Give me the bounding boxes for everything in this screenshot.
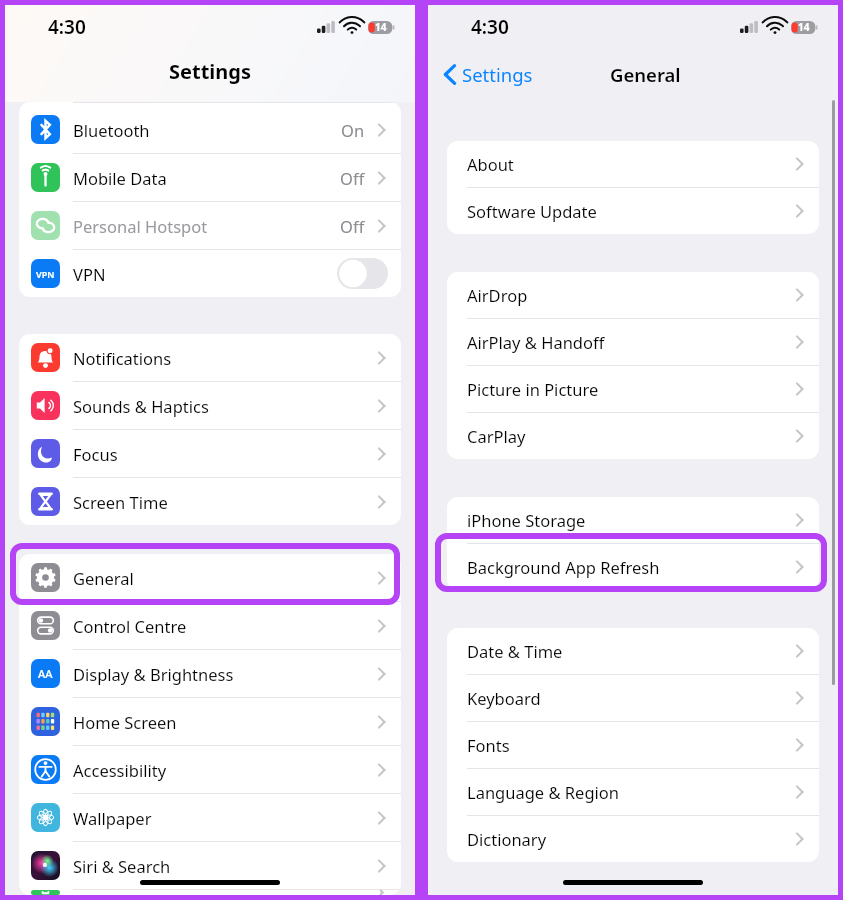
button[interactable]: Background App Refresh: [447, 544, 819, 590]
staticText: Sounds & Haptics: [73, 395, 374, 417]
button[interactable]: Notifications: [19, 334, 401, 382]
button[interactable]: General: [19, 554, 401, 602]
staticText: Focus: [73, 443, 374, 465]
button[interactable]: Wallpaper: [19, 794, 401, 842]
button[interactable]: Language & Region: [447, 769, 819, 816]
button[interactable]: CarPlay: [447, 413, 819, 459]
button[interactable]: Sounds & Haptics: [19, 382, 401, 430]
button[interactable]: Settings: [440, 57, 537, 92]
staticText: VPN: [73, 263, 337, 285]
staticText: 4:30: [471, 14, 509, 40]
staticText: iPhone Storage: [467, 509, 792, 531]
staticText: Personal Hotspot: [73, 215, 340, 237]
staticText: 4:30: [48, 14, 86, 40]
staticText: Language & Region: [467, 781, 792, 803]
staticText: AA: [38, 666, 53, 681]
button[interactable]: AirPlay & Handoff: [447, 319, 819, 366]
staticText: Date & Time: [467, 640, 792, 662]
staticText: Screen Time: [73, 491, 374, 513]
staticText: Software Update: [467, 200, 792, 222]
button[interactable]: Face ID & Passcode: [19, 890, 401, 895]
staticText: Settings: [462, 62, 533, 87]
staticText: CarPlay: [467, 425, 792, 447]
staticText: Dictionary: [467, 828, 792, 850]
staticText: Display & Brightness: [73, 663, 374, 685]
staticText: 14: [798, 20, 810, 34]
other: General highlighted: [10, 543, 400, 605]
staticText: Accessibility: [73, 759, 374, 781]
button[interactable]: Accessibility: [19, 746, 401, 794]
staticText: General: [73, 567, 374, 589]
staticText: Bluetooth: [73, 119, 341, 141]
button[interactable]: Home Screen: [19, 698, 401, 746]
button[interactable]: Screen Time: [19, 478, 401, 525]
button[interactable]: Personal Hotspot: [19, 202, 401, 250]
staticText: General: [610, 62, 681, 87]
staticText: Settings: [169, 58, 251, 85]
button[interactable]: VPN: [19, 250, 401, 297]
staticText: Home Screen: [73, 711, 374, 733]
button[interactable]: Fonts: [447, 722, 819, 769]
button[interactable]: Mobile Data: [19, 154, 401, 202]
button[interactable]: Siri & Search: [19, 842, 401, 890]
staticText: Control Centre: [73, 615, 374, 637]
staticText: Background App Refresh: [467, 556, 792, 578]
staticText: Off: [340, 215, 365, 237]
staticText: Wallpaper: [73, 807, 374, 829]
button[interactable]: Dictionary: [447, 816, 819, 862]
staticText: Picture in Picture: [467, 378, 792, 400]
staticText: Fonts: [467, 734, 792, 756]
staticText: Keyboard: [467, 687, 792, 709]
button[interactable]: AirDrop: [447, 272, 819, 319]
staticText: Siri & Search: [73, 855, 374, 877]
button[interactable]: Keyboard: [447, 675, 819, 722]
button[interactable]: Focus: [19, 430, 401, 478]
staticText: AirDrop: [467, 284, 792, 306]
staticText: On: [341, 119, 365, 141]
staticText: About: [467, 153, 792, 175]
button[interactable]: Bluetooth: [19, 106, 401, 154]
staticText: Notifications: [73, 347, 374, 369]
button[interactable]: AA: [19, 650, 401, 698]
button[interactable]: Date & Time: [447, 628, 819, 675]
other: Background App Refresh highlighted: [435, 533, 827, 592]
button[interactable]: Picture in Picture: [447, 366, 819, 413]
button[interactable]: Software Update: [447, 188, 819, 234]
staticText: VPN: [36, 268, 55, 280]
button[interactable]: About: [447, 141, 819, 188]
staticText: 14: [375, 20, 387, 34]
staticText: Mobile Data: [73, 167, 340, 189]
button[interactable]: iPhone Storage: [447, 497, 819, 544]
button[interactable]: Control Centre: [19, 602, 401, 650]
staticText: Off: [340, 167, 365, 189]
staticText: AirPlay & Handoff: [467, 331, 792, 353]
